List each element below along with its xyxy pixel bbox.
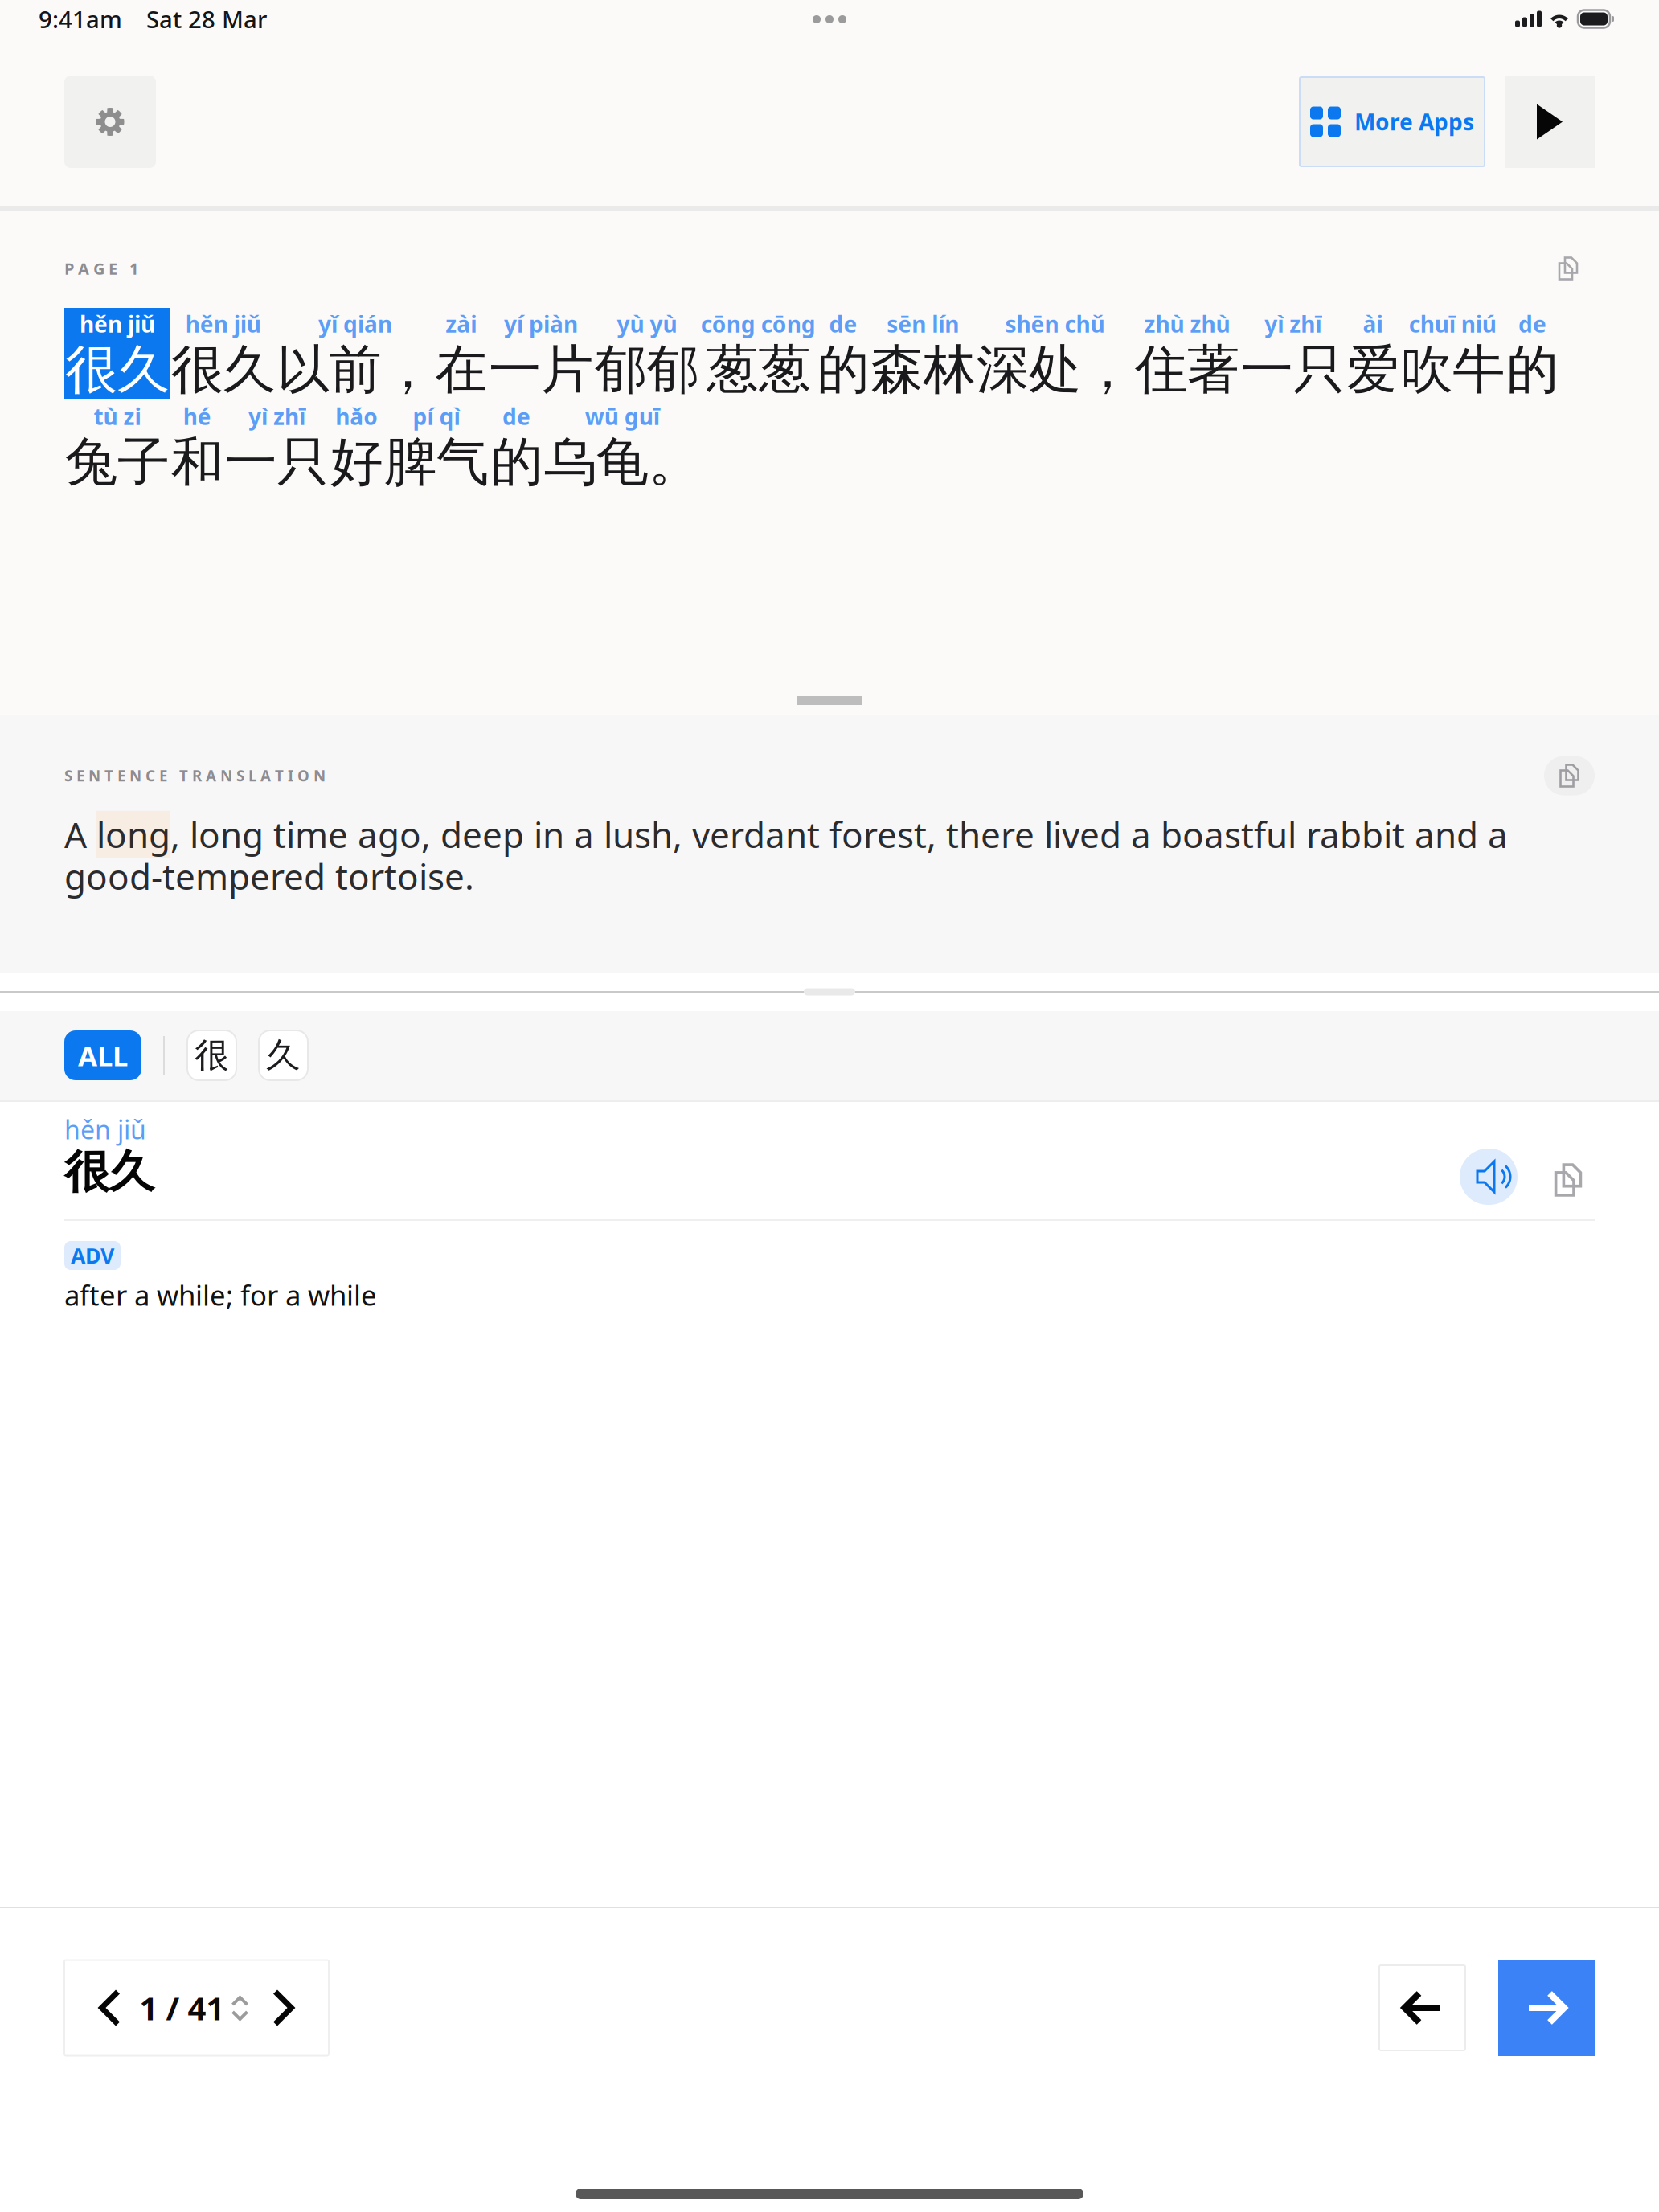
button[interactable]: Forward [1498,1960,1595,2056]
staticText: in [534,811,564,858]
button[interactable]: Previous page [80,1960,139,2056]
staticText: 住著 [1135,338,1239,402]
staticText: yǐ qián [318,309,392,339]
staticText: yì zhī [1265,309,1322,339]
staticText: good-tempered [64,853,326,900]
staticText: ài [1363,309,1383,339]
staticText: ALL [78,1037,128,1074]
staticText: yì zhī [248,401,305,431]
staticText: and [1415,811,1478,858]
staticText: 乌龟。 [544,430,701,494]
button[interactable]: Play pronunciation [1460,1149,1518,1205]
staticText: , [421,811,431,858]
staticText: A [64,811,87,858]
staticText: a [574,811,594,858]
staticText: 和 [171,430,223,494]
staticText: ago [358,811,421,858]
staticText: boastful [1161,811,1296,858]
staticText: lived [1044,811,1121,858]
staticText: P A G E 1 [64,258,138,279]
staticText: yí piàn [504,309,578,339]
staticText: after a while; for a while [64,1276,377,1313]
staticText: a [1488,811,1508,858]
staticText: yù yù [617,309,677,339]
staticText: tù zi [94,401,141,431]
staticText: long [96,811,170,858]
button[interactable]: Play [1505,76,1595,168]
staticText: rabbit [1306,811,1405,858]
button[interactable]: ALL [64,1030,141,1080]
staticText: verdant [692,811,820,858]
staticText: ADV [71,1241,114,1270]
staticText: forest [829,811,927,858]
staticText: there [946,811,1034,858]
staticText: zài [446,309,477,339]
button[interactable]: Copy [1542,1162,1595,1198]
staticText: , [170,811,180,858]
staticText: 1 / 41 [139,1986,225,2029]
staticText: sēn lín [887,309,959,339]
staticText: , [673,811,682,858]
staticText: 爱 [1347,338,1399,402]
staticText: Sat 28 Mar [146,3,267,35]
staticText: long [190,811,264,858]
staticText: 郁郁 [595,338,699,402]
staticText: 很久 [64,1144,154,1200]
staticText: 兔子 [65,430,170,494]
staticText: 一片 [489,338,593,402]
staticText: 好 [331,430,383,494]
staticText: 很久 [65,338,170,402]
staticText: 以前， [277,338,434,402]
staticText: a [1131,811,1151,858]
button[interactable]: Settings [64,76,156,168]
staticText: time [273,811,348,858]
button[interactable]: Copy [1544,756,1595,795]
staticText: 在 [435,338,487,402]
staticText: de [829,309,857,339]
staticText: deep [440,811,524,858]
button[interactable]: More Apps [1300,77,1485,166]
staticText: lush [604,811,673,858]
button[interactable]: 很 [187,1030,236,1080]
staticText: de [502,401,530,431]
staticText: shēn chǔ [1005,309,1105,339]
staticText: hěn jiǔ [79,309,155,339]
staticText: 一只 [225,430,329,494]
staticText: 很 [195,1034,229,1076]
staticText: 深处， [977,338,1133,402]
staticText: 一只 [1241,338,1345,402]
staticText: hé [183,401,211,431]
staticText: zhù zhù [1144,309,1230,339]
staticText: hěn jiǔ [64,1112,146,1146]
staticText: de [1518,309,1547,339]
staticText: 森林 [871,338,975,402]
staticText: 9:41am [39,3,122,35]
staticText: S E N T E N C E T R A N S L A T I O N [64,766,326,786]
staticText: More Apps [1354,107,1474,137]
staticText: 久 [266,1034,301,1076]
staticText: 的 [490,430,542,494]
staticText: 脾气 [384,430,489,494]
button[interactable]: Copy [1542,251,1595,286]
staticText: , [927,811,936,858]
staticText: tortoise [335,853,465,900]
staticText: 葱葱 [706,338,810,402]
staticText: cōng cōng [701,309,816,339]
button[interactable]: Back [1379,1965,1465,2050]
staticText: 吹牛 [1400,338,1505,402]
staticText: chuī niú [1409,309,1496,339]
button[interactable]: Next page [254,1960,313,2056]
staticText: pí qì [413,401,460,431]
staticText: 的 [1506,338,1559,402]
staticText: hěn jiǔ [185,309,261,339]
staticText: 很久 [171,338,275,402]
button[interactable]: 久 [259,1030,308,1080]
staticText: wū guī [585,401,660,431]
staticText: hǎo [335,401,378,431]
staticText: 的 [817,338,869,402]
staticText: . [465,853,474,900]
